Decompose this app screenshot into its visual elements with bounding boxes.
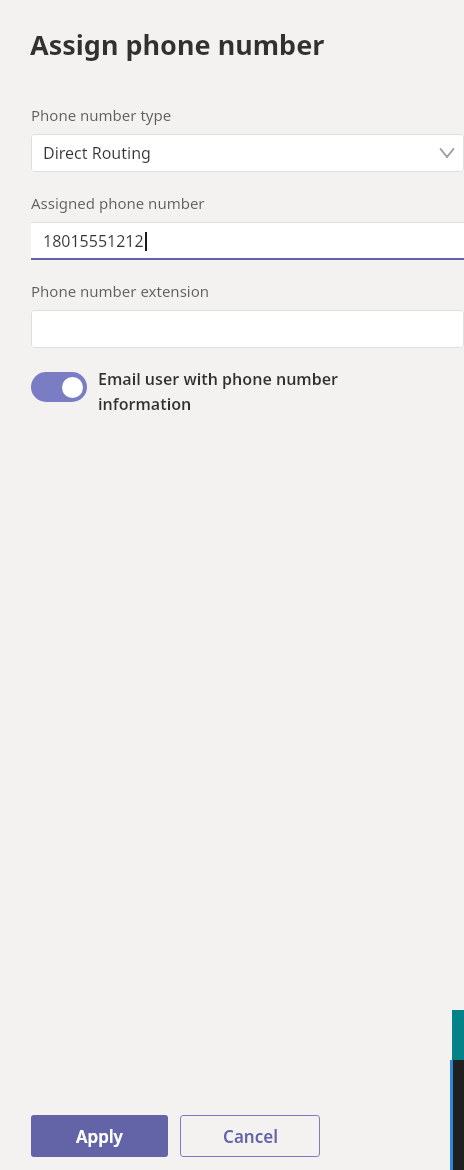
staticText: Direct Routing [43,142,151,164]
staticText: Email user with phone number information [98,368,361,414]
button[interactable] [31,310,464,348]
staticText: Cancel [223,1125,278,1148]
staticText: 18015551212 [43,230,144,252]
staticText: Phone number type [31,105,172,125]
staticText: Phone number extension [31,281,210,301]
button[interactable]: 18015551212 [31,222,464,260]
button[interactable]: Apply [31,1115,168,1157]
button[interactable]: Email user with phone number information… [31,368,361,414]
button[interactable]: Cancel [180,1115,320,1157]
staticText: Apply [76,1125,123,1148]
other: Email user with phone number information… [31,372,87,402]
button[interactable]: Direct Routing [31,134,464,172]
staticText: Assigned phone number [31,193,205,213]
staticText: Assign phone number [30,26,325,63]
